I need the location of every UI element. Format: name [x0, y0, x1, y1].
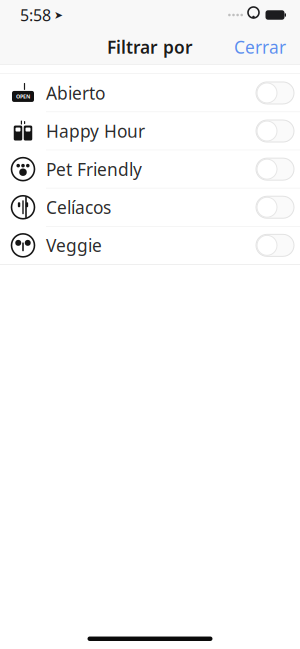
- staticText: Cerrar: [234, 35, 286, 58]
- staticText: Abierto: [46, 81, 105, 104]
- button[interactable]: Cerrar: [220, 27, 300, 66]
- staticText: ➤: [54, 9, 63, 21]
- staticText: Happy Hour: [46, 119, 145, 142]
- staticText: OPEN: [16, 93, 30, 100]
- button[interactable]: Celíacos: [0, 188, 300, 226]
- staticText: Filtrar por: [107, 35, 193, 58]
- button[interactable]: Veggie: [0, 227, 300, 264]
- button[interactable]: OPEN: [0, 74, 300, 112]
- staticText: 5:58: [20, 4, 51, 26]
- staticText: Celíacos: [46, 196, 111, 219]
- staticText: Pet Friendly: [46, 158, 142, 181]
- button[interactable]: Pet Friendly: [0, 150, 300, 188]
- staticText: Veggie: [46, 234, 102, 257]
- button[interactable]: Happy Hour: [0, 112, 300, 150]
